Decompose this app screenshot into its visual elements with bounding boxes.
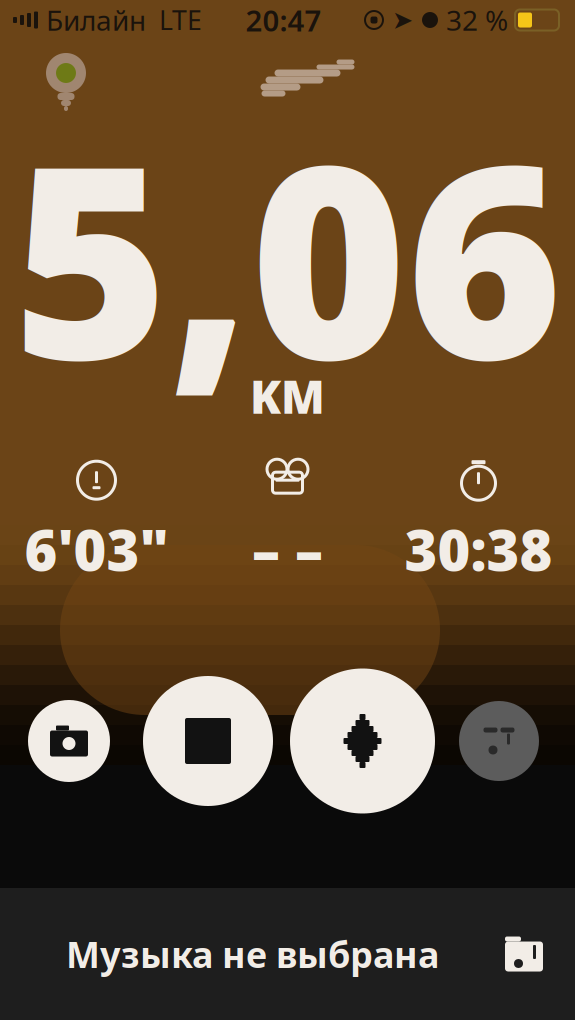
staticText: Билайн	[46, 1, 146, 39]
staticText: 32 %	[446, 1, 508, 39]
button[interactable]: Music	[459, 701, 539, 781]
staticText: 5,06	[12, 78, 562, 432]
button[interactable]: Stop run	[143, 676, 273, 806]
staticText: LTE	[159, 2, 202, 38]
staticText: ➤	[392, 6, 413, 34]
staticText: KM	[250, 366, 325, 426]
staticText: 6'03"	[24, 512, 168, 587]
button[interactable]: Camera	[28, 700, 110, 782]
staticText: – –	[252, 512, 323, 587]
staticText: Музыка не выбрана	[66, 930, 439, 978]
staticText: 20:47	[245, 0, 321, 39]
staticText: 30:38	[404, 512, 552, 587]
button[interactable]: Resume run	[290, 668, 435, 813]
button[interactable]: GPS signal	[0, 44, 88, 112]
button[interactable]: Музыка не выбрана	[0, 888, 575, 1020]
